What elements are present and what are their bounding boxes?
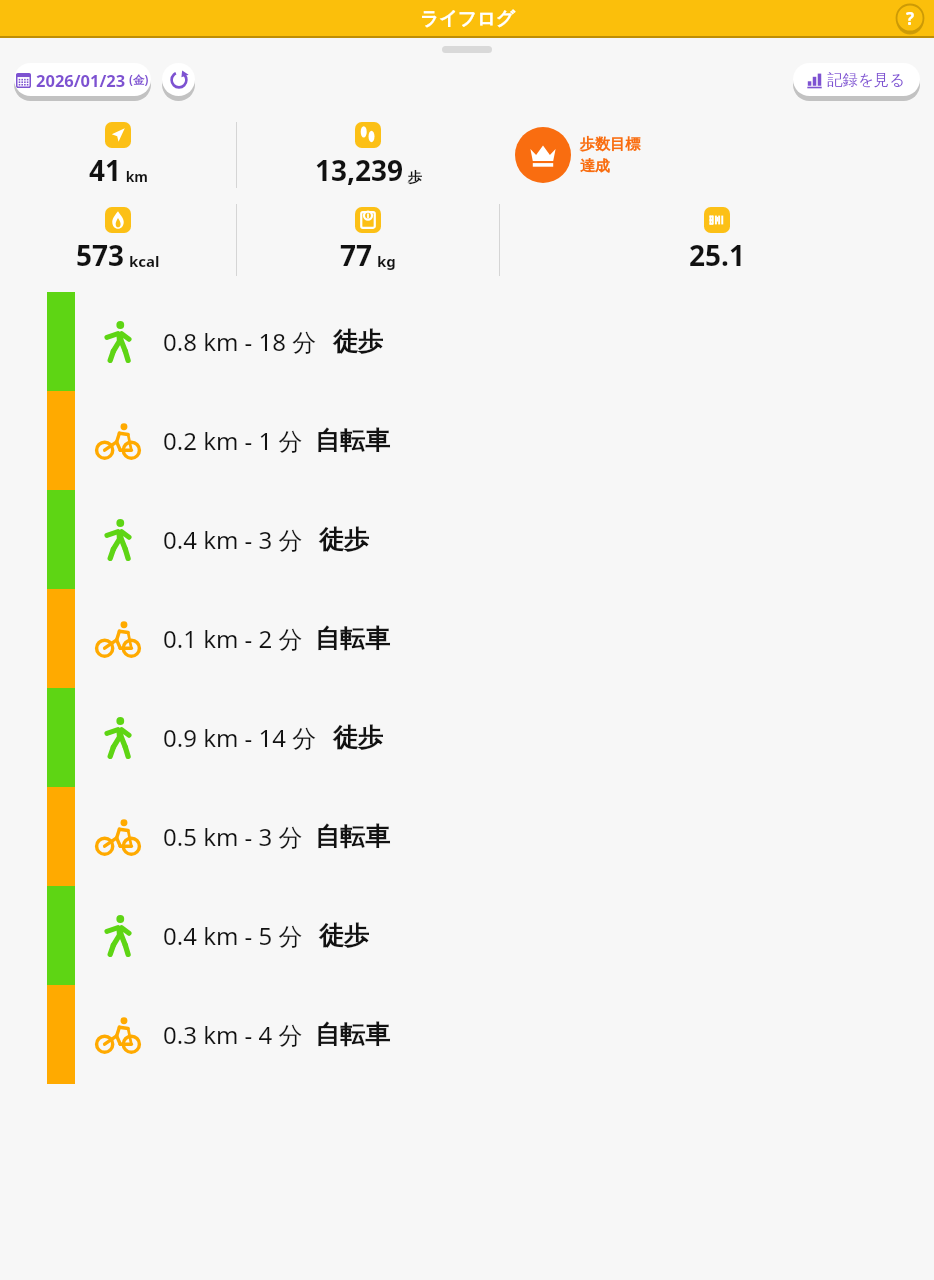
staticText: km bbox=[122, 167, 148, 186]
staticText: 徒歩 bbox=[319, 524, 369, 555]
staticText: 歩 bbox=[404, 167, 422, 186]
button[interactable]: 0.2 km - 1 分 bbox=[0, 391, 934, 490]
staticText: 自転車 bbox=[315, 425, 390, 456]
staticText: 徒歩 bbox=[333, 722, 383, 753]
button[interactable]: 歩数目標 bbox=[515, 127, 640, 183]
staticText: 77 bbox=[340, 236, 373, 274]
staticText: 0.2 km - 1 分 bbox=[163, 424, 303, 457]
button[interactable]: 記録を見る bbox=[793, 63, 920, 96]
staticText: 0.3 km - 4 分 bbox=[163, 1018, 303, 1051]
button[interactable]: 2026/01/23 bbox=[14, 63, 151, 96]
staticText: 徒歩 bbox=[319, 920, 369, 951]
button[interactable]: 0.4 km - 5 分 bbox=[0, 886, 934, 985]
button[interactable]: 0.9 km - 14 分 bbox=[0, 688, 934, 787]
staticText: 573 bbox=[76, 236, 125, 274]
staticText: kg bbox=[373, 251, 396, 271]
staticText: ? bbox=[906, 7, 915, 30]
button[interactable]: 0.1 km - 2 分 bbox=[0, 589, 934, 688]
staticText: 歩数目標 bbox=[580, 135, 640, 154]
staticText: 2026/01/23 bbox=[36, 69, 126, 91]
staticText: 自転車 bbox=[315, 821, 390, 852]
staticText: 25.1 bbox=[689, 236, 745, 274]
staticText: ライフログ bbox=[420, 7, 515, 30]
button[interactable]: 0.8 km - 18 分 bbox=[0, 292, 934, 391]
button[interactable]: 0.4 km - 3 分 bbox=[0, 490, 934, 589]
staticText: 自転車 bbox=[315, 623, 390, 654]
button[interactable]: Help bbox=[895, 3, 925, 33]
staticText: 0.9 km - 14 分 bbox=[163, 721, 317, 754]
staticText: 達成 bbox=[580, 157, 610, 176]
staticText: 記録を見る bbox=[827, 70, 906, 90]
staticText: 徒歩 bbox=[333, 326, 383, 357]
staticText: kcal bbox=[125, 251, 160, 271]
staticText: 0.8 km - 18 分 bbox=[163, 325, 317, 358]
button[interactable] bbox=[162, 63, 195, 96]
staticText: 0.5 km - 3 分 bbox=[163, 820, 303, 853]
button[interactable]: 0.5 km - 3 分 bbox=[0, 787, 934, 886]
staticText: 0.4 km - 5 分 bbox=[163, 919, 303, 952]
staticText: 13,239 bbox=[315, 151, 404, 189]
button[interactable]: 0.3 km - 4 分 bbox=[0, 985, 934, 1084]
staticText: 0.4 km - 3 分 bbox=[163, 523, 303, 556]
staticText: 41 bbox=[89, 151, 122, 189]
other: Refresh bbox=[162, 63, 195, 101]
staticText: 自転車 bbox=[315, 1019, 390, 1050]
staticText: 0.1 km - 2 分 bbox=[163, 622, 303, 655]
staticText: (金) bbox=[126, 72, 149, 88]
